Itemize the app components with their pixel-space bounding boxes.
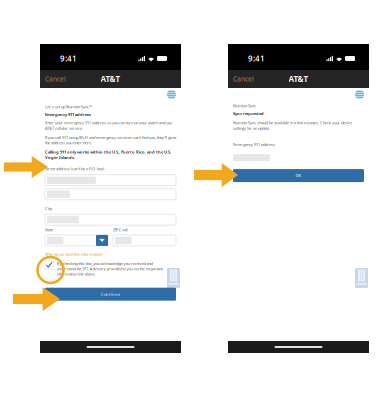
staticText: OK [295, 173, 301, 178]
staticText: By checking this box, you acknowledge yo… [56, 261, 162, 277]
button[interactable]: Cancel [228, 71, 259, 87]
staticText: NumberSync [233, 103, 256, 108]
staticText: AT&T [288, 74, 308, 84]
staticText: 9:41 [60, 53, 77, 64]
staticText: Cancel [233, 75, 254, 83]
button[interactable]: Choose state [96, 235, 108, 246]
button[interactable]: Acknowledge the 911 advisory [45, 261, 53, 269]
staticText: 9:41 [248, 53, 265, 64]
staticText: Emergency 911 address [45, 112, 91, 117]
staticText: Sync requested [233, 111, 264, 116]
staticText: Continue [101, 291, 120, 297]
button[interactable]: Continue [45, 288, 176, 301]
staticText: NumberSync should be available in a few … [233, 120, 352, 131]
staticText: Cancel [45, 75, 66, 83]
staticText: City [45, 206, 52, 211]
button[interactable]: Cancel [40, 71, 71, 87]
staticText: AT&T [100, 74, 120, 84]
staticText: Street address (can't be a P.O. box) [45, 166, 104, 171]
staticText: If you call 911 using Wi-Fi and emergenc… [45, 135, 176, 145]
staticText: Enter your emergency 911 address so you … [45, 120, 172, 131]
staticText: Calling 911 only works within the U.S., … [45, 149, 171, 160]
staticText: Let's set up NumberSync™ [45, 104, 92, 109]
staticText: Emergency 911 address [233, 142, 275, 147]
staticText: State [45, 227, 53, 232]
staticText: ZIP Code [113, 227, 128, 232]
staticText: Why do we need this information? [45, 251, 103, 257]
button[interactable]: OK [233, 169, 364, 182]
button[interactable]: Why do we need this information? [45, 251, 103, 257]
